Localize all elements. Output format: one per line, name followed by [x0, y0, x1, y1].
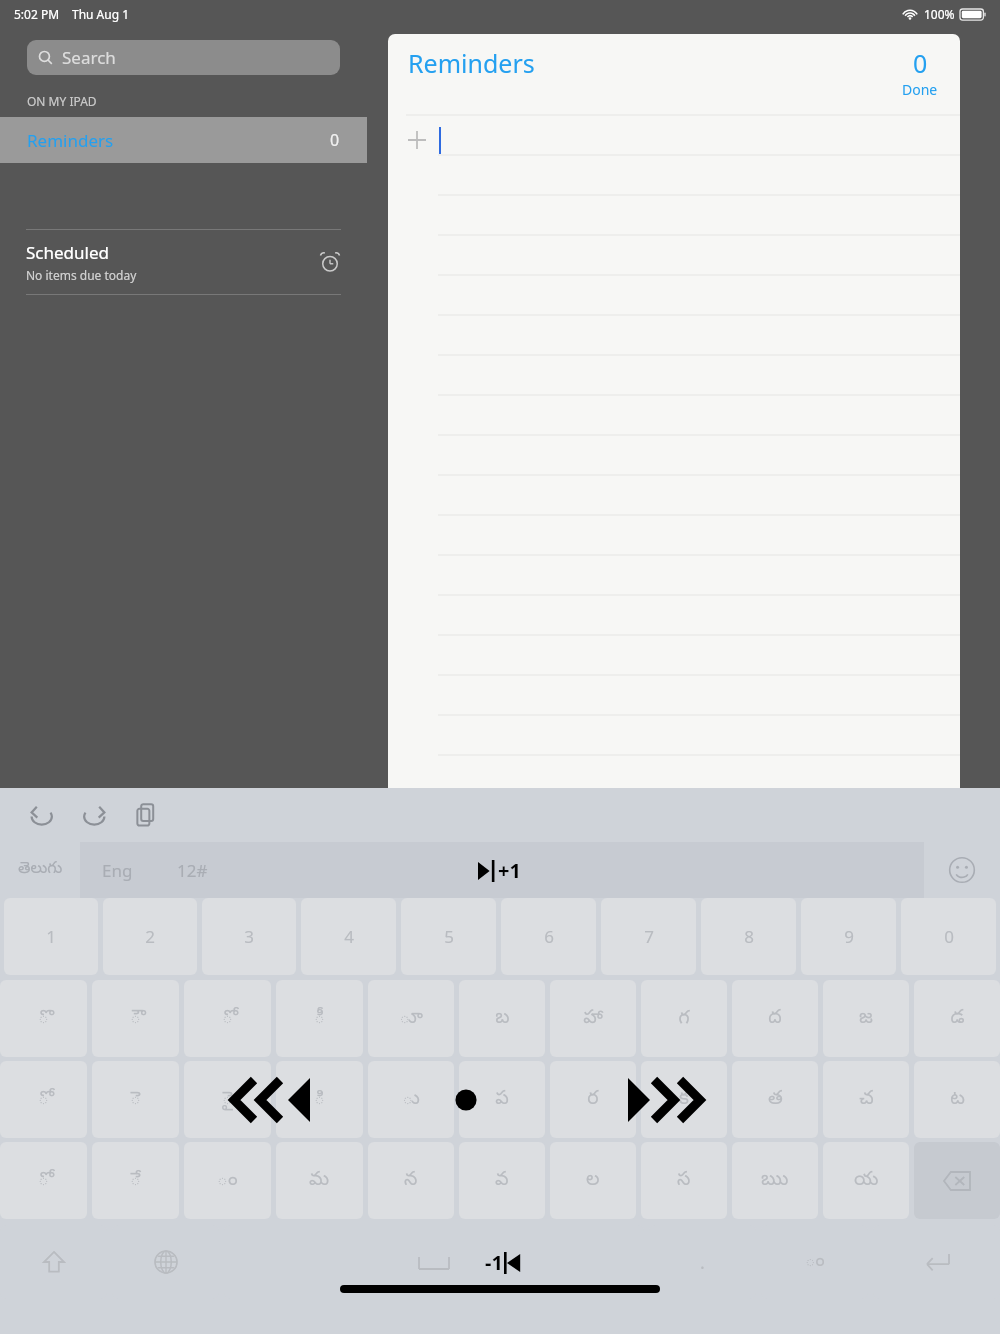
button[interactable]: Reminders	[0, 117, 367, 163]
button[interactable]: తెలుగు	[0, 842, 80, 898]
button[interactable]: ి	[276, 1061, 363, 1138]
staticText: Reminders	[27, 129, 114, 152]
button[interactable]: బ	[459, 980, 545, 1057]
staticText: ఋ	[761, 1168, 789, 1194]
button[interactable]: ో	[0, 1142, 87, 1219]
staticText: 100%	[924, 6, 955, 22]
staticText: Scheduled	[26, 241, 109, 264]
button[interactable]: Period	[649, 1225, 756, 1299]
staticText: ై	[222, 1087, 233, 1113]
staticText: 12#	[177, 859, 208, 882]
staticText: ద	[768, 1006, 782, 1032]
staticText: మ	[309, 1168, 330, 1194]
button[interactable]: న	[368, 1142, 454, 1219]
staticText: ొ	[38, 1006, 49, 1032]
button[interactable]: Scheduled	[0, 230, 367, 294]
staticText: +1	[498, 857, 521, 884]
staticText: ి	[314, 1087, 325, 1113]
button[interactable]: Switch keyboard	[112, 1225, 219, 1299]
staticText: ే	[130, 1168, 141, 1194]
button[interactable]: ై	[184, 1061, 271, 1138]
button[interactable]: ూ	[368, 980, 454, 1057]
staticText: ల	[586, 1168, 600, 1194]
staticText: తెలుగు	[18, 859, 63, 881]
staticText: క	[679, 1087, 689, 1113]
button[interactable]: ద	[732, 980, 818, 1057]
staticText: 1	[46, 925, 56, 948]
staticText: Search	[62, 46, 116, 69]
staticText: 7	[644, 925, 654, 948]
button[interactable]: వ	[459, 1142, 545, 1219]
staticText: హా	[583, 1006, 603, 1032]
staticText: Done	[902, 80, 938, 99]
button[interactable]: జ	[823, 980, 909, 1057]
staticText: 9	[844, 925, 854, 948]
button[interactable]: ో	[184, 980, 271, 1057]
button[interactable]: Add reminder	[408, 118, 960, 162]
staticText: ON MY IPAD	[27, 93, 97, 109]
button[interactable]: Backspace	[914, 1142, 1000, 1219]
staticText: వ	[495, 1168, 509, 1194]
button[interactable]: Emoji	[924, 842, 1000, 898]
other: Alarm	[319, 251, 341, 273]
button[interactable]: చ	[823, 1061, 909, 1138]
button[interactable]: Paste	[126, 795, 166, 835]
button[interactable]: ల	[550, 1142, 636, 1219]
staticText: జ	[859, 1006, 873, 1032]
staticText: ె	[130, 1087, 141, 1113]
staticText: 6	[544, 925, 554, 948]
staticText: ో	[38, 1087, 49, 1113]
button[interactable]: ర	[550, 1061, 636, 1138]
button[interactable]: Search	[27, 40, 340, 75]
staticText: న	[404, 1168, 418, 1194]
button[interactable]: Space	[224, 1225, 644, 1299]
staticText: Reminders	[408, 46, 535, 80]
staticText: ో	[38, 1168, 49, 1194]
staticText: బ	[495, 1006, 510, 1032]
staticText: 2	[145, 925, 155, 948]
button[interactable]: మ	[276, 1142, 363, 1219]
staticText: ు	[402, 1087, 420, 1113]
staticText: ీ	[314, 1006, 325, 1032]
button[interactable]: హా	[550, 980, 636, 1057]
button[interactable]: య	[823, 1142, 909, 1219]
button[interactable]: Redo	[74, 795, 114, 835]
button[interactable]: Undo	[22, 795, 62, 835]
button[interactable]: ో	[0, 1061, 87, 1138]
button[interactable]: 0	[902, 46, 938, 99]
button[interactable]: ఋ	[732, 1142, 818, 1219]
button[interactable]: క	[641, 1061, 727, 1138]
other: Add reminder	[408, 131, 426, 149]
staticText: Thu Aug 1	[72, 6, 130, 22]
button[interactable]: ప	[459, 1061, 545, 1138]
button[interactable]: ట	[914, 1061, 1000, 1138]
staticText: -1	[485, 1249, 503, 1276]
button[interactable]: స	[641, 1142, 727, 1219]
button[interactable]: 12#	[155, 842, 230, 898]
button[interactable]: త	[732, 1061, 818, 1138]
button[interactable]: డ	[914, 980, 1000, 1057]
button[interactable]: Eng	[80, 842, 155, 898]
staticText: చ	[859, 1087, 874, 1113]
